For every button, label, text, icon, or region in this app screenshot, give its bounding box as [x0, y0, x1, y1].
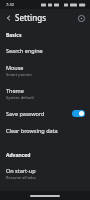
button[interactable]: Save password — [0, 105, 90, 122]
staticText: 7:32 — [6, 2, 14, 7]
button[interactable]: Search engine — [0, 42, 90, 59]
button[interactable]: Help — [75, 12, 87, 24]
staticText: Clear browsing data — [6, 127, 58, 134]
staticText: Mouse — [6, 64, 24, 71]
staticText: Basics — [6, 32, 22, 39]
staticText: System default — [6, 95, 34, 100]
button[interactable]: Mouse — [0, 59, 90, 82]
button[interactable]: Toggle on — [72, 110, 85, 117]
staticText: Advanced — [6, 152, 31, 159]
staticText: Smart pointer — [6, 72, 33, 77]
staticText: Search engine — [6, 47, 43, 54]
button[interactable]: On start-up — [0, 162, 90, 185]
staticText: On start-up — [6, 167, 36, 174]
button[interactable]: Theme — [0, 82, 90, 105]
button[interactable]: Back — [2, 11, 15, 24]
staticText: Save password — [6, 110, 45, 117]
button[interactable]: Clear browsing data — [0, 122, 90, 139]
staticText: Resume all tabs — [6, 175, 36, 180]
staticText: Settings — [15, 12, 47, 23]
staticText: Theme — [6, 87, 24, 94]
